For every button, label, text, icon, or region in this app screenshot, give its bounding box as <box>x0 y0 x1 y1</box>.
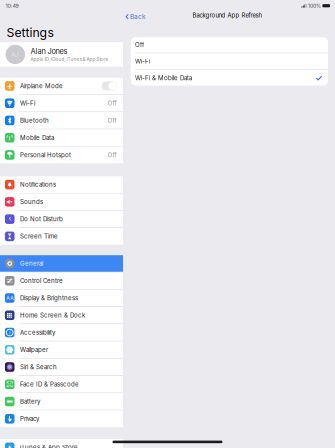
button[interactable]: Personal Hotspot <box>0 147 123 163</box>
staticText: Alan Jones <box>30 47 67 56</box>
staticText: 10:49 <box>5 3 18 9</box>
staticText: Siri & Search <box>20 363 57 371</box>
staticText: Face ID & Passcode <box>20 381 79 388</box>
staticText: Off <box>135 41 144 48</box>
button[interactable]: Bluetooth <box>0 112 123 129</box>
staticText: Background App Refresh <box>192 12 261 19</box>
button[interactable]: Privacy <box>0 410 123 427</box>
button[interactable]: Battery <box>0 393 123 410</box>
button[interactable]: Wi-Fi <box>131 53 328 69</box>
button[interactable]: AA <box>0 290 123 306</box>
staticText: Control Centre <box>20 277 63 284</box>
staticText: Wi-Fi <box>20 99 35 107</box>
staticText: iTunes & App Store <box>20 444 78 448</box>
staticText: Off <box>107 99 116 107</box>
button[interactable]: i <box>0 324 123 341</box>
button[interactable]: Wi-Fi <box>0 95 123 111</box>
button[interactable]: Airplane Mode <box>0 78 123 94</box>
button[interactable]: Siri & Search <box>0 359 123 375</box>
button[interactable]: Mobile Data <box>0 129 123 146</box>
staticText: Off <box>107 151 116 159</box>
staticText: AJ <box>11 51 19 58</box>
staticText: Sounds <box>20 198 43 206</box>
staticText: Back <box>130 13 146 21</box>
staticText: Bluetooth <box>20 117 49 124</box>
button[interactable]: Screen Time <box>0 228 123 245</box>
button[interactable]: iTunes & App Store <box>0 439 123 448</box>
button[interactable]: Face ID & Passcode <box>0 376 123 392</box>
staticText: i <box>9 329 10 336</box>
button[interactable]: Back <box>124 10 148 23</box>
button[interactable]: Wi-Fi & Mobile Data <box>131 70 328 86</box>
staticText: Airplane Mode <box>20 82 63 90</box>
staticText: Wi-Fi & Mobile Data <box>135 74 192 82</box>
staticText: Battery <box>20 398 40 405</box>
staticText: Apple ID, iCloud, iTunes & App Store <box>30 56 108 62</box>
button[interactable]: Home Screen & Dock <box>0 307 123 323</box>
staticText: Mobile Data <box>20 134 54 141</box>
staticText: Settings <box>6 25 53 40</box>
staticText: Privacy <box>20 415 39 422</box>
staticText: General <box>20 260 43 267</box>
staticText: Accessibility <box>20 329 55 336</box>
button[interactable]: Control Centre <box>0 272 123 289</box>
staticText: Wi-Fi <box>135 58 150 65</box>
staticText: Display & Brightness <box>20 294 78 302</box>
button[interactable]: Do Not Disturb <box>0 211 123 227</box>
staticText: Notifications <box>20 181 56 188</box>
button[interactable]: AJ <box>0 42 123 67</box>
staticText: Home Screen & Dock <box>20 312 85 319</box>
staticText: AA <box>6 295 13 301</box>
button[interactable]: Off <box>131 37 328 53</box>
button[interactable]: Sounds <box>0 193 123 210</box>
button[interactable]: Wallpaper <box>0 341 123 358</box>
staticText: Screen Time <box>20 233 58 240</box>
button[interactable]: Notifications <box>0 176 123 193</box>
staticText: 100% <box>308 3 321 9</box>
staticText: Personal Hotspot <box>20 151 71 159</box>
staticText: Wallpaper <box>20 346 48 353</box>
button[interactable]: General <box>0 255 123 272</box>
staticText: Off <box>107 117 116 124</box>
staticText: Do Not Disturb <box>20 215 63 223</box>
